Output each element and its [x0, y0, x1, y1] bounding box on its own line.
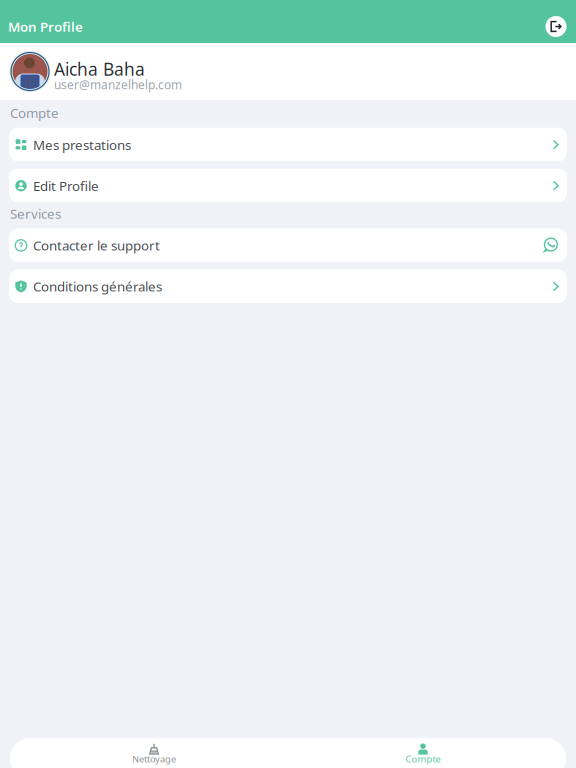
button[interactable]: Log out [543, 13, 569, 39]
staticText: Mon Profile [8, 18, 83, 35]
button[interactable]: Mes prestations [9, 128, 567, 162]
staticText: Mes prestations [33, 136, 131, 154]
staticText: Aicha Baha [54, 57, 145, 80]
staticText: Nettoyage [132, 753, 176, 765]
staticText: Conditions générales [33, 278, 162, 295]
staticText: Compte [10, 104, 59, 122]
button[interactable]: Nettoyage [89, 743, 219, 768]
staticText: Contacter le support [33, 237, 160, 254]
staticText: Compte [405, 753, 440, 765]
staticText: Edit Profile [33, 177, 99, 195]
staticText: Services [10, 205, 61, 222]
button[interactable]: Conditions générales [9, 269, 567, 303]
button[interactable]: Contacter le support [9, 228, 567, 262]
staticText: user@manzelhelp.com [54, 76, 182, 92]
button[interactable]: Edit Profile [9, 169, 567, 203]
button[interactable]: Compte [358, 743, 488, 768]
